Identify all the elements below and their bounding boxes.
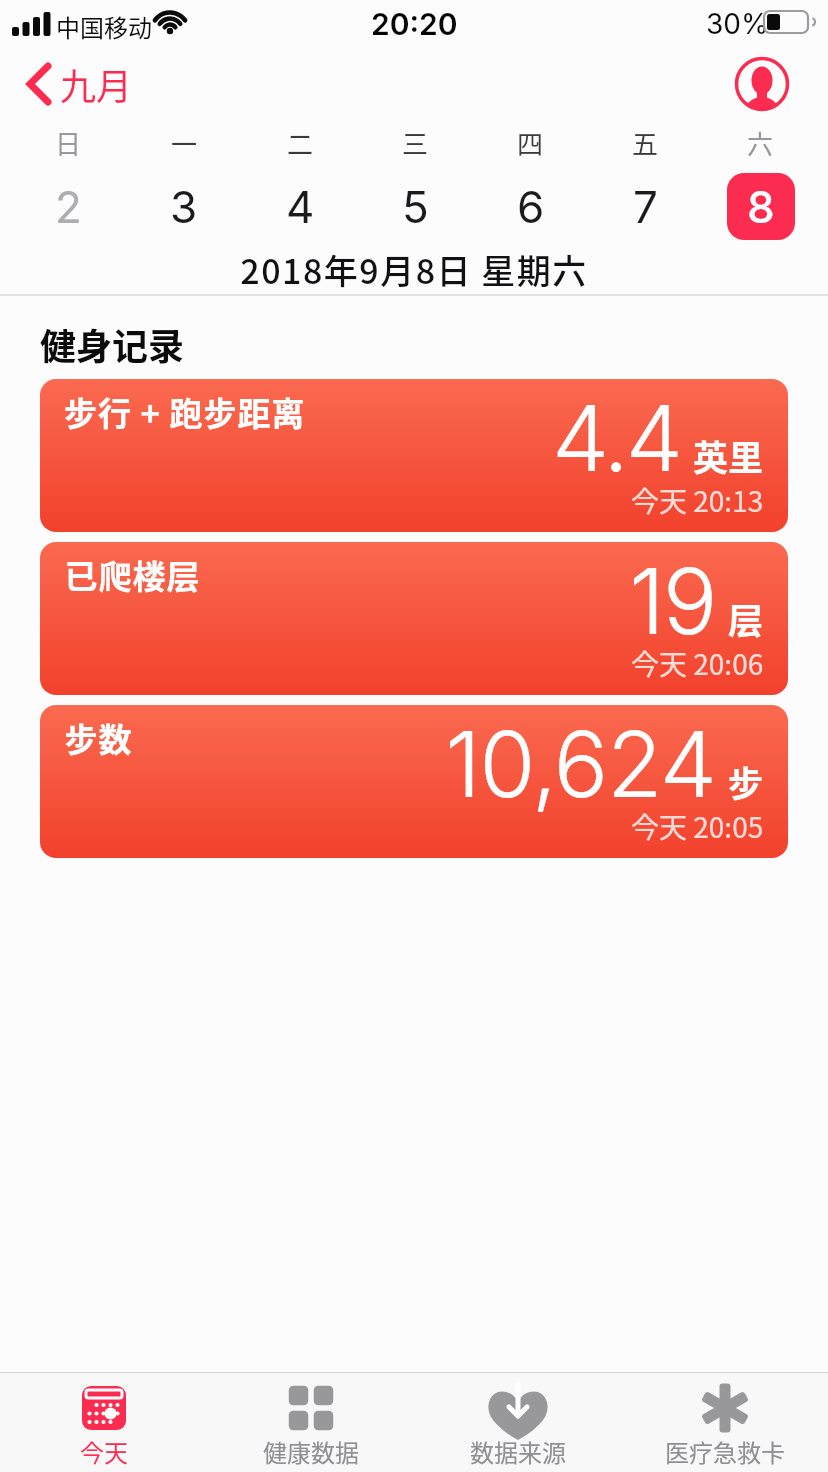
staticText: 数据来源 xyxy=(470,1434,566,1469)
staticText: 二 xyxy=(287,124,314,162)
button[interactable]: 健康数据 xyxy=(207,1373,414,1472)
staticText: 日 xyxy=(55,124,82,162)
button[interactable]: 九月 xyxy=(26,58,133,110)
button[interactable]: 8 xyxy=(727,173,795,240)
staticText: 8 xyxy=(747,180,775,233)
staticText: 四 xyxy=(517,124,544,162)
staticText: 中国移动 xyxy=(56,9,152,44)
staticText: 已爬楼层 xyxy=(64,551,200,599)
staticText: 步行 + 跑步距离 xyxy=(64,388,306,436)
staticText: 三 xyxy=(402,124,429,162)
button[interactable]: 医疗急救卡 xyxy=(621,1373,828,1472)
staticText: 2 xyxy=(55,180,82,233)
staticText: 30% xyxy=(706,7,769,41)
staticText: 6 xyxy=(517,180,545,233)
staticText: 层 xyxy=(728,593,764,644)
staticText: 六 xyxy=(747,124,774,162)
staticText: 健康数据 xyxy=(263,1434,359,1469)
staticText: 步 xyxy=(728,756,764,807)
staticText: 4.4 xyxy=(552,383,681,493)
button[interactable] xyxy=(734,56,790,112)
button[interactable]: 今天 xyxy=(0,1373,207,1472)
button[interactable]: 已爬楼层 xyxy=(40,542,788,695)
staticText: 今天 xyxy=(80,1434,128,1469)
staticText: 10,624 xyxy=(445,709,716,819)
staticText: 19 xyxy=(629,546,716,656)
staticText: 4 xyxy=(286,180,315,233)
staticText: 九月 xyxy=(60,58,133,110)
button[interactable]: 步数 xyxy=(40,705,788,858)
staticText: 英里 xyxy=(693,430,764,481)
staticText: 5 xyxy=(402,180,429,233)
staticText: 步数 xyxy=(64,714,132,762)
staticText: 今天 20:06 xyxy=(631,643,764,684)
staticText: 2018年9月8日 星期六 xyxy=(0,245,828,294)
staticText: 健身记录 xyxy=(40,318,185,370)
staticText: 20:20 xyxy=(371,6,458,42)
staticText: 7 xyxy=(633,180,658,233)
staticText: 今天 20:13 xyxy=(631,480,764,521)
staticText: 医疗急救卡 xyxy=(665,1434,785,1469)
staticText: 今天 20:05 xyxy=(631,806,764,847)
button[interactable]: 数据来源 xyxy=(414,1373,621,1472)
button[interactable]: 步行 + 跑步距离 xyxy=(40,379,788,532)
staticText: 3 xyxy=(170,180,198,233)
staticText: 一 xyxy=(171,124,198,162)
staticText: 五 xyxy=(632,124,659,162)
